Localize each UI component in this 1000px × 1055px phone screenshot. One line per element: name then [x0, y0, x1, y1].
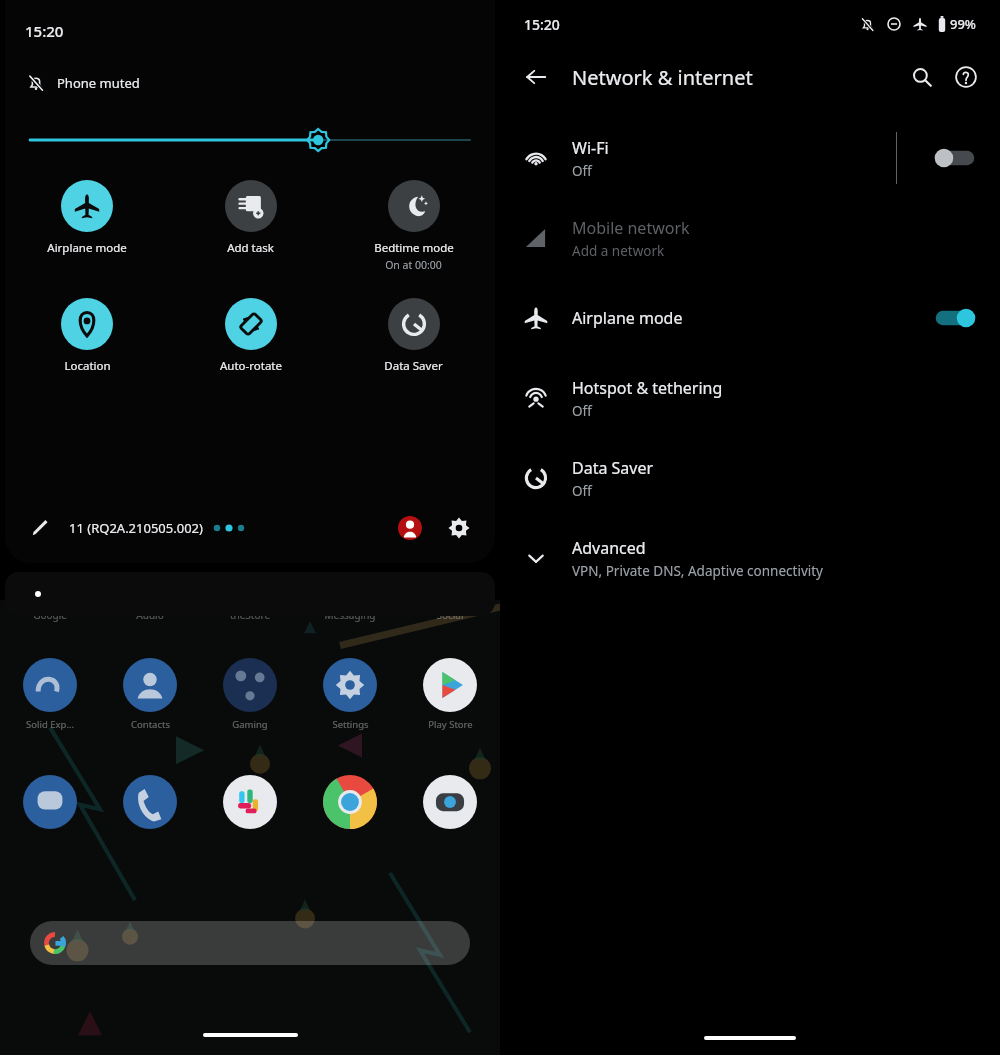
button[interactable] [0, 775, 100, 829]
staticText: Off [572, 402, 592, 420]
staticText: Network & internet [572, 64, 753, 91]
button[interactable]: Bedtime mode [332, 178, 495, 274]
button[interactable]: Gaming [200, 658, 300, 731]
button[interactable]: Wi-Fi toggle [932, 143, 978, 173]
staticText: Wi-Fi [572, 137, 609, 159]
button[interactable]: Airplane mode [500, 278, 1000, 358]
staticText: 15:20 [25, 21, 64, 41]
staticText: theStore [200, 608, 300, 622]
button[interactable]: Data Saver [332, 296, 495, 376]
staticText: Location [64, 358, 111, 374]
button[interactable]: Back [514, 55, 558, 99]
button[interactable]: User [395, 513, 425, 543]
staticText: Gaming [232, 718, 268, 731]
staticText: Audio [100, 608, 200, 622]
button[interactable]: Help [944, 55, 988, 99]
staticText: 15:20 [524, 15, 560, 34]
button[interactable] [400, 775, 500, 829]
staticText: Airplane mode [47, 240, 127, 256]
button[interactable]: Edit tiles [23, 511, 57, 545]
staticText: Social [400, 608, 500, 622]
button[interactable]: Mobile network [500, 198, 1000, 278]
staticText: Off [572, 162, 592, 180]
button[interactable] [200, 775, 300, 829]
button[interactable]: Add task [169, 178, 332, 258]
staticText: Google [0, 608, 100, 622]
staticText: Solid Exp… [26, 718, 74, 731]
staticText: Bedtime mode [374, 240, 454, 256]
staticText: Contacts [131, 718, 170, 731]
button[interactable]: Data Saver [500, 438, 1000, 518]
staticText: Hotspot & tethering [572, 377, 723, 399]
staticText: Airplane mode [572, 307, 683, 329]
button[interactable]: Location [5, 296, 169, 376]
button[interactable]: Google search [30, 921, 470, 965]
button[interactable]: Airplane mode [5, 178, 169, 258]
staticText: Messaging [300, 608, 400, 622]
button[interactable]: Play Store [400, 658, 500, 731]
staticText: Play Store [428, 718, 473, 731]
staticText: Data Saver [572, 457, 654, 479]
button[interactable]: Solid Exp… [0, 658, 100, 731]
button[interactable] [300, 775, 400, 829]
staticText: On at 00:00 [385, 258, 442, 272]
staticText: Auto-rotate [220, 358, 282, 374]
button[interactable]: Settings [441, 510, 477, 546]
button[interactable]: Auto-rotate [169, 296, 332, 376]
button[interactable] [5, 572, 495, 616]
button[interactable]: Settings [300, 658, 400, 731]
button[interactable] [100, 775, 200, 829]
staticText: Advanced [572, 537, 646, 559]
staticText: Settings [332, 718, 369, 731]
button[interactable]: Advanced [500, 518, 1000, 598]
staticText: Phone muted [57, 74, 140, 92]
button[interactable]: Hotspot & tethering [500, 358, 1000, 438]
button[interactable]: Wi-Fi [500, 118, 1000, 198]
button[interactable]: Airplane mode toggle [932, 303, 978, 333]
staticText: 99% [950, 15, 976, 33]
staticText: Add task [227, 240, 274, 256]
staticText: VPN, Private DNS, Adaptive connectivity [572, 562, 823, 580]
button[interactable]: Search [900, 55, 944, 99]
staticText: Off [572, 482, 592, 500]
staticText: Data Saver [384, 358, 443, 374]
staticText: Mobile network [572, 217, 690, 239]
button[interactable]: Brightness [30, 118, 470, 162]
staticText: Add a network [572, 242, 665, 260]
button[interactable]: Contacts [100, 658, 200, 731]
staticText: 11 (RQ2A.210505.002) [69, 519, 203, 537]
